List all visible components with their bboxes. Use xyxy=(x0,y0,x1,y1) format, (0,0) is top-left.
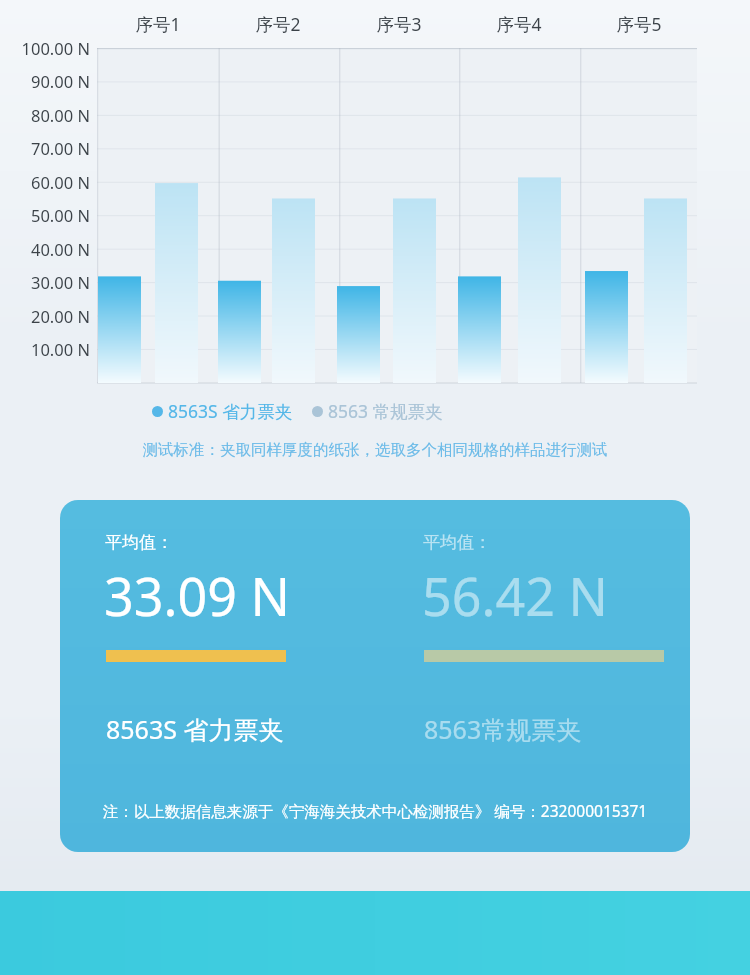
staticText: 60.00 N xyxy=(2,171,90,195)
staticText: 8563S 省力票夹 xyxy=(106,712,284,746)
staticText: 70.00 N xyxy=(2,137,90,161)
staticText: 平均值： xyxy=(105,532,173,553)
staticText: 10.00 N xyxy=(2,338,90,362)
staticText: 序号2 xyxy=(233,12,323,38)
staticText: 50.00 N xyxy=(2,204,90,228)
staticText: 30.00 N xyxy=(2,271,90,295)
staticText: 40.00 N xyxy=(2,238,90,262)
staticText: 序号5 xyxy=(594,12,684,38)
staticText: 90.00 N xyxy=(2,70,90,94)
staticText: 序号1 xyxy=(113,12,203,38)
staticText: 测试标准：夹取同样厚度的纸张，选取多个相同规格的样品进行测试 xyxy=(0,440,750,466)
staticText: 注：以上数据信息来源于《宁海海关技术中心检测报告》 编号：23200001537… xyxy=(60,800,690,826)
staticText: 33.09 N xyxy=(104,560,290,631)
staticText: 序号3 xyxy=(354,12,444,38)
staticText: 80.00 N xyxy=(2,104,90,128)
button[interactable]: 平均值： xyxy=(60,500,690,852)
staticText: 100.00 N xyxy=(2,37,90,61)
staticText: 平均值： xyxy=(423,532,491,553)
staticText: 20.00 N xyxy=(2,305,90,329)
staticText: 8563 常规票夹 xyxy=(328,399,443,423)
staticText: 8563S 省力票夹 xyxy=(168,399,293,423)
staticText: 序号4 xyxy=(474,12,564,38)
staticText: 8563常规票夹 xyxy=(424,712,582,746)
staticText: 56.42 N xyxy=(422,560,608,631)
